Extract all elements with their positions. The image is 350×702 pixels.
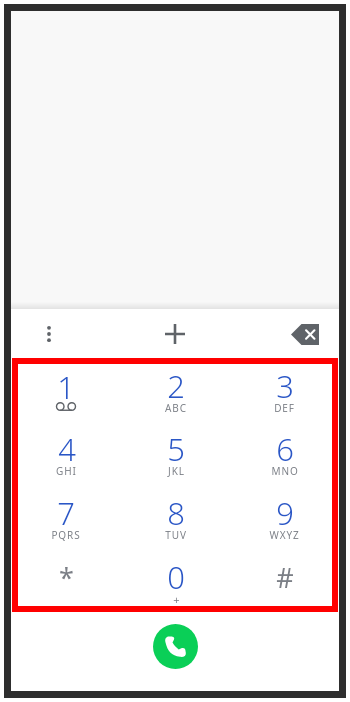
staticText: 2	[167, 365, 185, 399]
staticText: 3	[276, 365, 294, 399]
button[interactable]: 9	[230, 485, 339, 549]
button[interactable]: Add contact	[152, 311, 198, 357]
staticText: GHI	[56, 464, 77, 478]
button[interactable]: Backspace	[283, 312, 327, 356]
button[interactable]: 3	[230, 358, 339, 421]
button[interactable]: *	[11, 549, 121, 613]
staticText: JKL	[168, 464, 185, 478]
button[interactable]: 7	[11, 485, 121, 549]
button[interactable]: #	[230, 549, 339, 613]
button[interactable]: Call	[153, 624, 198, 669]
staticText: 4	[58, 428, 76, 462]
button[interactable]: 0	[121, 549, 230, 613]
staticText: WXYZ	[269, 528, 300, 542]
staticText: 8	[167, 492, 185, 526]
staticText: 1	[57, 366, 75, 400]
staticText: ABC	[165, 401, 187, 415]
staticText: PQRS	[51, 528, 81, 542]
staticText: MNO	[271, 464, 299, 478]
button[interactable]: 2	[121, 358, 230, 421]
staticText: DEF	[274, 401, 295, 415]
staticText: 5	[167, 428, 185, 462]
button[interactable]: More options	[27, 312, 71, 356]
staticText: TUV	[165, 528, 187, 542]
staticText: 7	[57, 492, 75, 526]
staticText: *	[59, 559, 74, 593]
button[interactable]: 5	[121, 421, 230, 485]
staticText: 6	[276, 428, 294, 462]
staticText: #	[276, 559, 294, 593]
button[interactable]: 6	[230, 421, 339, 485]
button[interactable]: 1	[11, 358, 121, 421]
button[interactable]: 8	[121, 485, 230, 549]
button[interactable]: 4	[11, 421, 121, 485]
staticText: +	[173, 592, 180, 607]
staticText: 0	[167, 556, 185, 590]
staticText: 9	[276, 492, 294, 526]
